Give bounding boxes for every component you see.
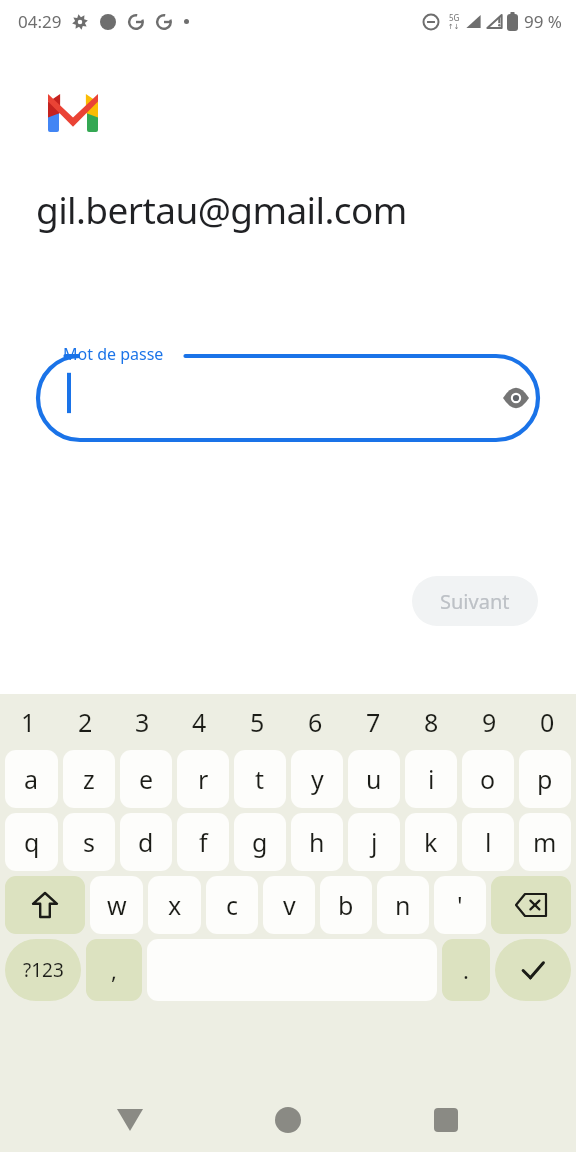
button[interactable]: 8	[402, 694, 460, 750]
staticText: y	[311, 762, 324, 796]
button[interactable]: 4	[171, 694, 228, 750]
staticText: w	[107, 888, 127, 922]
button[interactable]: Valider	[495, 939, 571, 1001]
button[interactable]: '	[434, 876, 486, 934]
staticText: 6	[308, 705, 323, 739]
button[interactable]: k	[405, 813, 457, 871]
staticText: .	[463, 955, 469, 985]
button[interactable]: Applications récentes	[418, 1092, 474, 1148]
staticText: 2	[78, 705, 93, 739]
staticText: u	[366, 762, 382, 796]
button[interactable]: o	[462, 750, 514, 808]
staticText: 4	[192, 705, 207, 739]
button[interactable]: 9	[460, 694, 518, 750]
button[interactable]: g	[234, 813, 286, 871]
staticText: k	[424, 825, 438, 859]
button[interactable]: .	[442, 939, 490, 1001]
staticText: j	[371, 825, 378, 859]
button[interactable]: d	[120, 813, 172, 871]
staticText: s	[83, 825, 95, 859]
button[interactable]: r	[177, 750, 229, 808]
staticText: 7	[366, 705, 381, 739]
button[interactable]: u	[348, 750, 400, 808]
staticText: m	[533, 825, 557, 859]
staticText: ↑↓	[448, 23, 460, 31]
staticText: 1	[21, 705, 36, 739]
staticText: 9	[482, 705, 497, 739]
button[interactable]: f	[177, 813, 229, 871]
staticText: ?123	[23, 957, 64, 983]
button[interactable]: x	[148, 876, 201, 934]
staticText: o	[480, 762, 496, 796]
staticText: ,	[111, 955, 117, 985]
button[interactable]: l	[462, 813, 514, 871]
button[interactable]: c	[206, 876, 258, 934]
button[interactable]: 3	[114, 694, 171, 750]
staticText: Mot de passe	[63, 343, 164, 365]
staticText: 5G	[449, 12, 460, 23]
button[interactable]: Supprimer	[491, 876, 571, 934]
staticText: b	[338, 888, 354, 922]
button[interactable]: j	[348, 813, 400, 871]
button[interactable]: 2	[57, 694, 114, 750]
staticText: l	[485, 825, 492, 859]
staticText: '	[457, 888, 463, 922]
button[interactable]: e	[120, 750, 172, 808]
staticText: t	[255, 762, 265, 796]
button[interactable]: v	[263, 876, 315, 934]
button[interactable]: b	[320, 876, 372, 934]
button[interactable]: ,	[86, 939, 142, 1001]
button[interactable]: n	[377, 876, 429, 934]
staticText: g	[252, 825, 268, 859]
button[interactable]: 6	[286, 694, 344, 750]
button[interactable]: i	[405, 750, 457, 808]
staticText: 8	[424, 705, 439, 739]
button[interactable]: m	[519, 813, 571, 871]
staticText: Suivant	[440, 588, 510, 615]
staticText: 99 %	[524, 10, 562, 33]
button[interactable]: 7	[344, 694, 402, 750]
staticText: a	[24, 762, 39, 796]
button[interactable]: h	[291, 813, 343, 871]
staticText: 5	[250, 705, 265, 739]
button[interactable]: Accueil	[260, 1092, 316, 1148]
button[interactable]: t	[234, 750, 286, 808]
staticText: gil.bertau@gmail.com	[36, 184, 407, 234]
staticText: 0	[540, 705, 555, 739]
button[interactable]: Suivant	[412, 576, 538, 626]
button[interactable]: q	[5, 813, 58, 871]
button[interactable]: ?123	[5, 939, 81, 1001]
staticText: i	[428, 762, 435, 796]
button[interactable]: y	[291, 750, 343, 808]
staticText: f	[199, 825, 208, 859]
staticText: z	[83, 762, 95, 796]
staticText: e	[139, 762, 154, 796]
staticText: p	[537, 762, 553, 796]
button[interactable]: Afficher le mot de passe	[494, 376, 538, 420]
staticText: d	[138, 825, 154, 859]
button[interactable]: Maj	[5, 876, 85, 934]
staticText: 04:29	[18, 10, 62, 33]
staticText: 3	[135, 705, 150, 739]
staticText: x	[168, 888, 182, 922]
staticText: v	[283, 888, 296, 922]
staticText: n	[395, 888, 411, 922]
staticText: q	[24, 825, 40, 859]
button[interactable]: z	[63, 750, 115, 808]
button[interactable]: p	[519, 750, 571, 808]
button[interactable]: 1	[0, 694, 57, 750]
staticText: h	[309, 825, 325, 859]
staticText: c	[226, 888, 239, 922]
button[interactable]: s	[63, 813, 115, 871]
button[interactable]: a	[5, 750, 58, 808]
staticText: r	[198, 762, 209, 796]
button[interactable]: 5	[228, 694, 286, 750]
button[interactable]: 0	[518, 694, 576, 750]
button[interactable]: Retour	[102, 1092, 158, 1148]
button[interactable]: w	[90, 876, 143, 934]
